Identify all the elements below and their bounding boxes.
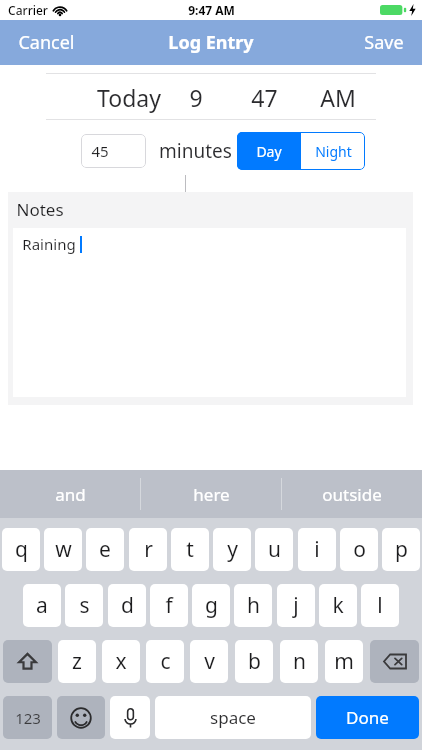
button[interactable]: q: [2, 528, 40, 571]
button[interactable]: Shift: [3, 640, 52, 683]
button[interactable]: i: [298, 528, 336, 571]
button[interactable]: Save: [364, 20, 404, 65]
staticText: d: [121, 591, 134, 620]
button[interactable]: Cancel: [18, 20, 75, 65]
staticText: here: [193, 483, 230, 506]
staticText: 123: [15, 708, 41, 728]
button[interactable]: Emoji: [57, 696, 105, 739]
staticText: e: [99, 535, 111, 564]
staticText: 9: [189, 82, 203, 113]
staticText: l: [377, 591, 383, 620]
staticText: s: [79, 591, 90, 620]
staticText: and: [55, 483, 86, 506]
staticText: minutes: [159, 138, 232, 164]
staticText: r: [144, 535, 153, 564]
staticText: h: [247, 591, 260, 620]
staticText: p: [395, 535, 408, 564]
button[interactable]: e: [86, 528, 124, 571]
button[interactable]: 123: [3, 696, 52, 739]
button[interactable]: g: [192, 584, 230, 627]
staticText: i: [314, 535, 320, 564]
button[interactable]: Day: [237, 132, 301, 170]
staticText: n: [293, 647, 306, 676]
button[interactable]: k: [319, 584, 357, 627]
staticText: c: [160, 647, 171, 676]
button[interactable]: w: [44, 528, 82, 571]
staticText: Notes: [16, 198, 64, 221]
staticText: Done: [346, 706, 389, 729]
button[interactable]: l: [361, 584, 399, 627]
button[interactable]: Done: [316, 696, 419, 739]
staticText: w: [55, 535, 72, 564]
staticText: y: [227, 535, 238, 564]
button[interactable]: Raining: [13, 228, 406, 397]
button[interactable]: Backspace: [370, 640, 419, 683]
button[interactable]: z: [58, 640, 96, 683]
button[interactable]: r: [129, 528, 167, 571]
button[interactable]: 45: [81, 134, 146, 168]
button[interactable]: p: [382, 528, 420, 571]
staticText: x: [115, 647, 127, 676]
button[interactable]: b: [235, 640, 273, 683]
button[interactable]: f: [150, 584, 188, 627]
staticText: outside: [322, 483, 382, 506]
button[interactable]: d: [108, 584, 146, 627]
staticText: m: [334, 647, 354, 676]
button[interactable]: a: [23, 584, 61, 627]
button[interactable]: outside: [282, 470, 422, 518]
button[interactable]: s: [65, 584, 103, 627]
button[interactable]: c: [146, 640, 184, 683]
button[interactable]: Today: [0, 65, 422, 127]
button[interactable]: Dictation: [110, 696, 150, 739]
staticText: AM: [320, 82, 356, 113]
staticText: space: [210, 706, 256, 729]
button[interactable]: m: [325, 640, 363, 683]
button[interactable]: n: [280, 640, 318, 683]
staticText: Today: [97, 82, 161, 113]
staticText: z: [72, 647, 82, 676]
staticText: 45: [91, 141, 109, 161]
staticText: j: [293, 591, 299, 620]
staticText: f: [165, 591, 173, 620]
staticText: g: [205, 591, 218, 620]
button[interactable]: x: [102, 640, 140, 683]
button[interactable]: y: [213, 528, 251, 571]
button[interactable]: v: [190, 640, 228, 683]
staticText: Carrier: [8, 2, 48, 18]
staticText: u: [268, 535, 281, 564]
staticText: Night: [315, 142, 352, 161]
button[interactable]: space: [155, 696, 311, 739]
button[interactable]: Night: [301, 132, 365, 170]
button[interactable]: u: [255, 528, 293, 571]
button[interactable]: j: [277, 584, 315, 627]
button[interactable]: t: [171, 528, 209, 571]
staticText: Raining: [22, 234, 76, 254]
staticText: Log Entry: [168, 30, 254, 55]
staticText: o: [353, 535, 366, 564]
staticText: k: [332, 591, 344, 620]
staticText: v: [204, 647, 215, 676]
staticText: t: [186, 535, 194, 564]
staticText: 47: [251, 82, 278, 113]
button[interactable]: here: [141, 470, 281, 518]
staticText: q: [15, 535, 28, 564]
button[interactable]: h: [234, 584, 272, 627]
staticText: b: [248, 647, 261, 676]
staticText: 9:47 AM: [188, 2, 235, 18]
button[interactable]: o: [340, 528, 378, 571]
staticText: Cancel: [18, 30, 75, 55]
staticText: Day: [256, 142, 282, 161]
staticText: Save: [364, 30, 404, 55]
staticText: a: [36, 591, 48, 620]
button[interactable]: and: [0, 470, 140, 518]
